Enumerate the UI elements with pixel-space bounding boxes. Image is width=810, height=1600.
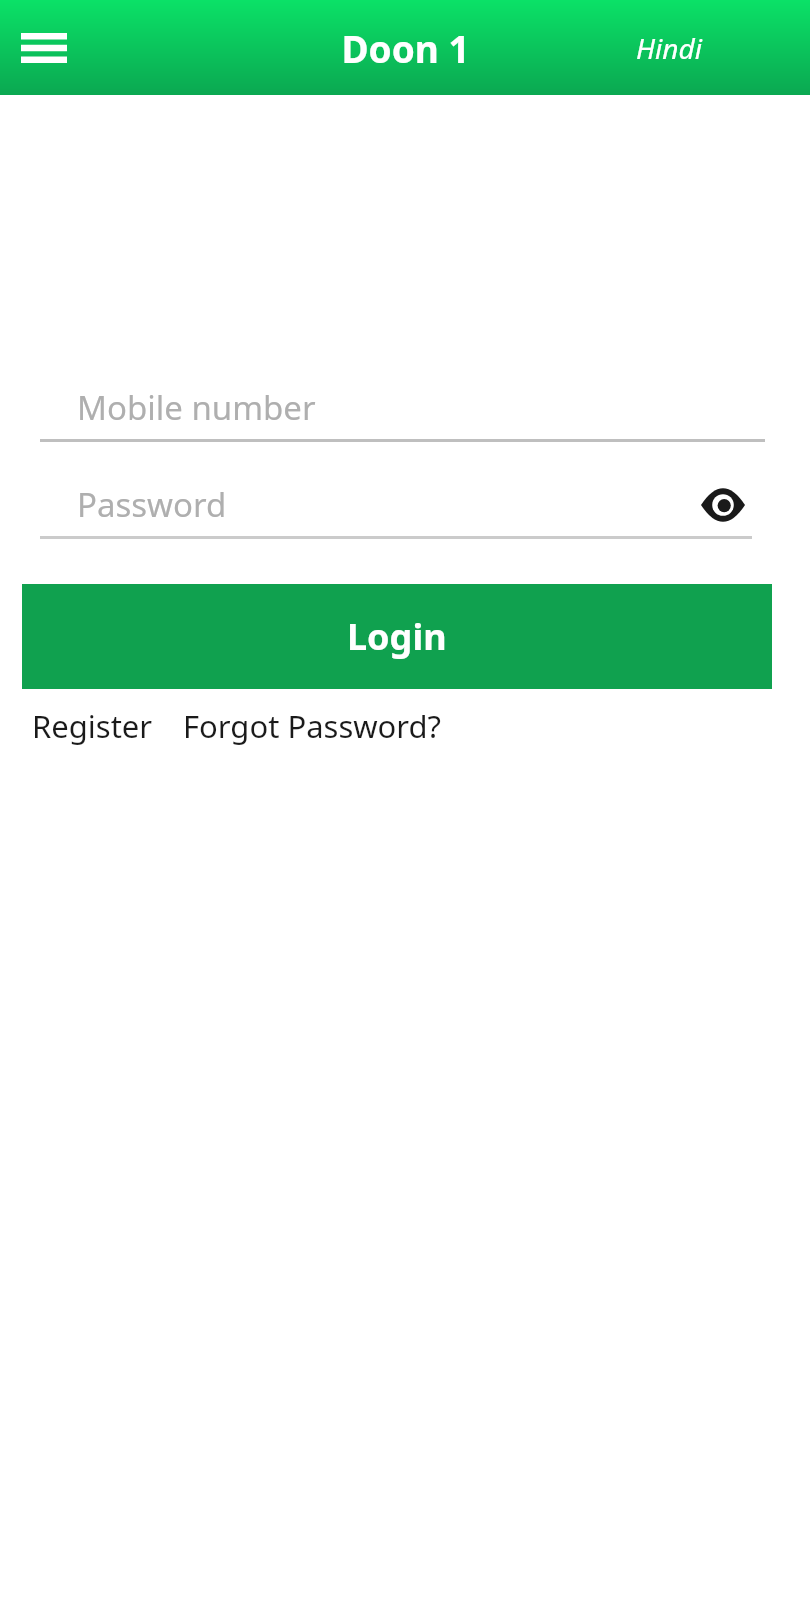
- staticText: Forgot Password?: [183, 705, 442, 747]
- staticText: Password: [77, 482, 227, 527]
- button[interactable]: Hindi: [636, 29, 702, 67]
- button[interactable]: Menu: [10, 14, 78, 82]
- button[interactable]: Forgot Password?: [183, 705, 442, 747]
- staticText: Hindi: [636, 29, 702, 67]
- button[interactable]: Register: [32, 705, 153, 747]
- button[interactable]: Password: [40, 473, 752, 536]
- staticText: Doon 1: [341, 23, 470, 73]
- button[interactable]: Login: [22, 584, 772, 689]
- staticText: Register: [32, 705, 153, 747]
- button[interactable]: Mobile number: [40, 376, 765, 442]
- button[interactable]: Show password: [694, 476, 752, 534]
- staticText: Login: [347, 612, 447, 661]
- staticText: Mobile number: [77, 385, 316, 430]
